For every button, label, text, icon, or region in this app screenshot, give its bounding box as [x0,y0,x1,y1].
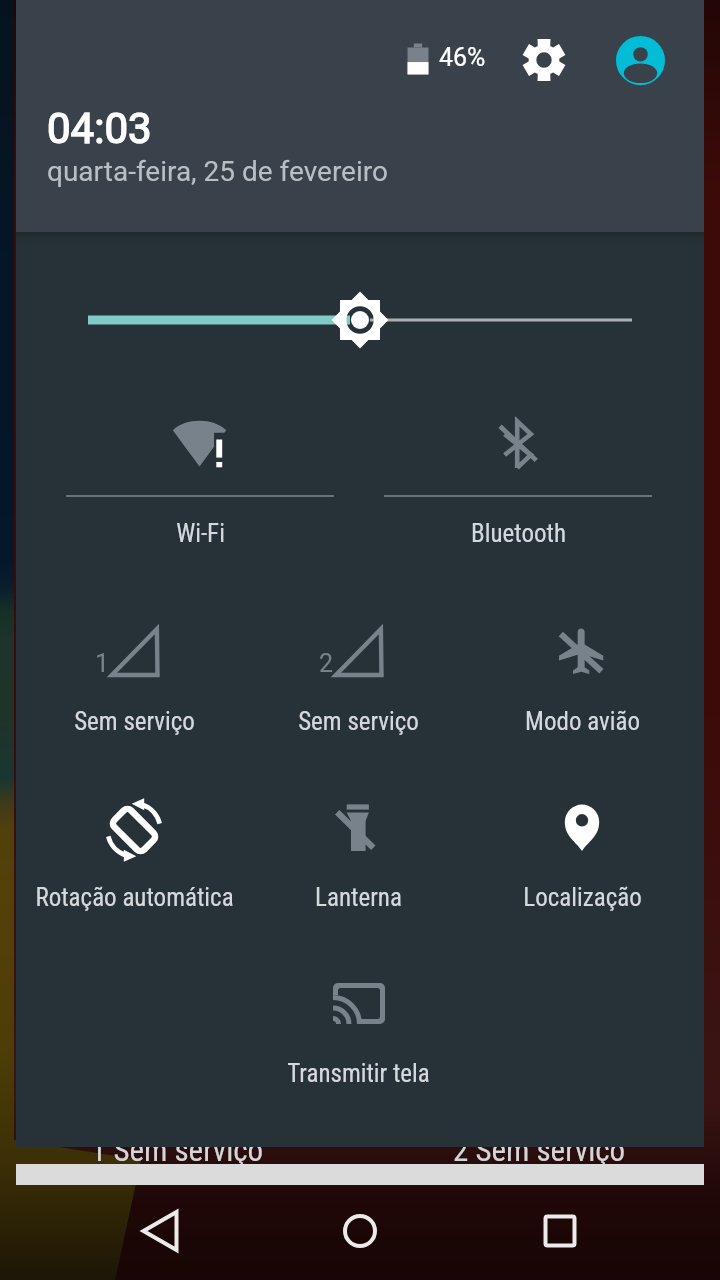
button[interactable]: Brightness [64,286,656,354]
staticText: quarta-feira, 25 de fevereiro [47,155,388,188]
button[interactable]: Bluetooth [368,400,668,550]
staticText: 1 [95,649,110,678]
button[interactable]: Localização [470,780,694,930]
button[interactable]: User profile [608,28,672,92]
button[interactable]: Back [100,1183,220,1279]
button[interactable]: 2 [246,604,470,754]
staticText: 2 [319,649,334,678]
button[interactable]: Transmitir tela [246,956,470,1106]
button[interactable]: 1 [22,604,246,754]
staticText: Localização [523,883,642,912]
button[interactable]: Home [300,1183,420,1279]
staticText: 1 Sem serviço [91,1132,264,1168]
staticText: Modo avião [525,707,640,736]
staticText: Lanterna [315,883,402,912]
staticText: Sem serviço [74,707,195,736]
staticText: Transmitir tela [287,1059,430,1088]
staticText: Rotação automática [35,883,234,912]
staticText: 46% [439,43,486,72]
staticText: Bluetooth [471,519,566,548]
button[interactable]: Lanterna [246,780,470,930]
staticText: 04:03 [47,104,152,153]
button[interactable]: Modo avião [470,604,694,754]
button[interactable]: Rotação automática [22,780,246,930]
staticText: Sem serviço [298,707,419,736]
staticText: 04:03 [47,104,152,153]
staticText: Wi-Fi [176,519,225,548]
button[interactable]: Recent apps [500,1183,620,1279]
button[interactable]: Wi-Fi [50,400,350,550]
staticText: 2 Sem serviço [453,1132,626,1168]
button[interactable]: Settings [512,28,576,92]
